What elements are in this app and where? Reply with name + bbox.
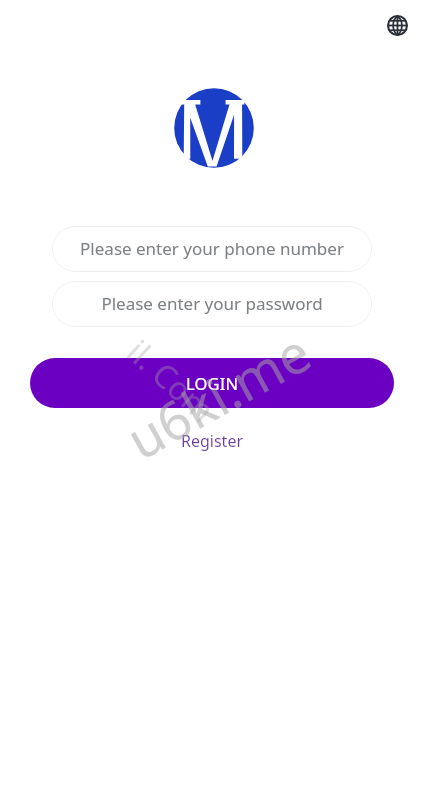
button[interactable]: LOGIN [30,358,394,408]
staticText: LOGIN [186,372,239,394]
staticText: Register [181,430,244,452]
staticText: Please enter your password [101,292,323,315]
button[interactable]: Language [383,11,411,39]
button[interactable]: Please enter your password [52,281,372,327]
staticText: Please enter your phone number [80,237,344,260]
button[interactable]: Please enter your phone number [52,226,372,272]
button[interactable]: Register [169,424,256,458]
